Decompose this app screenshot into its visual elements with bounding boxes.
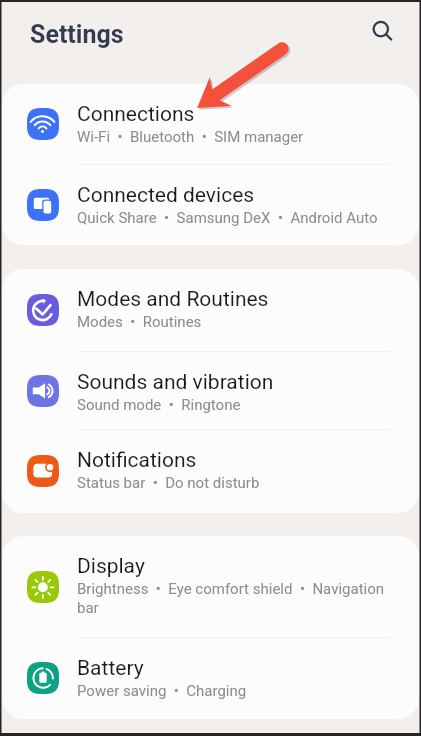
staticText: Notifications [77, 448, 197, 473]
button[interactable]: Display [2, 536, 419, 638]
staticText: Sounds and vibration [77, 370, 274, 395]
staticText: Quick Share • Samsung DeX • Android Auto [77, 209, 378, 227]
staticText: Display [77, 554, 145, 579]
staticText: Modes • Routines [77, 313, 202, 331]
staticText: Modes and Routines [77, 287, 269, 312]
button[interactable]: Connected devices [2, 165, 419, 245]
staticText: Status bar • Do not disturb [77, 474, 260, 492]
staticText: Battery [77, 656, 144, 681]
staticText: Wi-Fi • Bluetooth • SIM manager [77, 128, 304, 146]
staticText: Sound mode • Ringtone [77, 396, 241, 414]
button[interactable]: Connections [2, 84, 419, 165]
staticText: Connections [77, 102, 195, 127]
staticText: Brightness • Eye comfort shield • Naviga… [77, 580, 395, 617]
staticText: Power saving • Charging [77, 682, 247, 700]
button[interactable]: Battery [2, 638, 419, 719]
button[interactable]: Search [359, 7, 403, 51]
button[interactable]: Sounds and vibration [2, 352, 419, 430]
button[interactable]: Notifications [2, 430, 419, 513]
staticText: Settings [30, 20, 124, 49]
button[interactable]: Modes and Routines [2, 269, 419, 352]
staticText: Connected devices [77, 183, 255, 208]
